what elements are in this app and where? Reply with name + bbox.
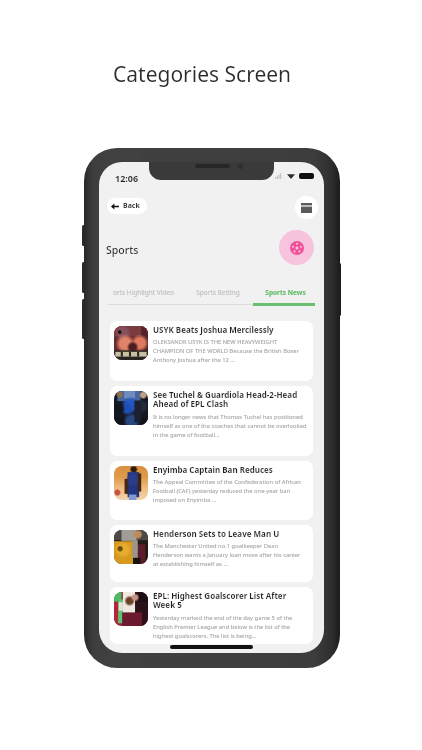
staticText: The Appeal Committee of the Confederatio…	[153, 478, 307, 504]
button[interactable]: Back	[107, 198, 147, 214]
staticText: See Tuchel & Guardiola Head-2-Head Ahead…	[153, 389, 307, 410]
staticText: USYK Beats Joshua Mercilessly	[153, 324, 274, 335]
staticText: EPL: Highest Goalscorer List After Week …	[153, 590, 307, 611]
staticText: orts Highlight Video	[113, 288, 174, 297]
staticText: Categories Screen	[113, 60, 292, 89]
staticText: The Manchester United no.1 goalkeeper De…	[153, 542, 307, 568]
button[interactable]: Sports News	[256, 288, 315, 307]
staticText: Henderson Sets to Leave Man U	[153, 528, 280, 539]
staticText: Sports	[106, 243, 139, 257]
button[interactable]: See Tuchel & Guardiola Head-2-Head Ahead…	[110, 386, 313, 456]
staticText: It is no longer news that Thomas Tuchel …	[153, 413, 307, 439]
staticText: Yesterday marked the end of the day game…	[153, 614, 307, 640]
button[interactable]: Henderson Sets to Leave Man U	[110, 525, 313, 582]
button[interactable]: Menu	[295, 196, 318, 219]
staticText: 12:06	[115, 172, 139, 184]
staticText: Sports Betting	[196, 288, 240, 297]
staticText: Sports News	[265, 288, 306, 297]
staticText: OLEKSANDR USYK IS THE NEW HEAVYWEIGHT CH…	[153, 338, 307, 364]
button[interactable]: EPL: Highest Goalscorer List After Week …	[110, 587, 313, 644]
staticText: Back	[123, 201, 140, 211]
staticText: Enyimba Captain Ban Reduces	[153, 464, 273, 475]
button[interactable]: Sports category	[279, 230, 314, 265]
button[interactable]: Enyimba Captain Ban Reduces	[110, 461, 313, 520]
button[interactable]: Sports Betting	[179, 288, 256, 307]
button[interactable]: USYK Beats Joshua Mercilessly	[110, 321, 313, 381]
button[interactable]: orts Highlight Video	[108, 288, 179, 307]
